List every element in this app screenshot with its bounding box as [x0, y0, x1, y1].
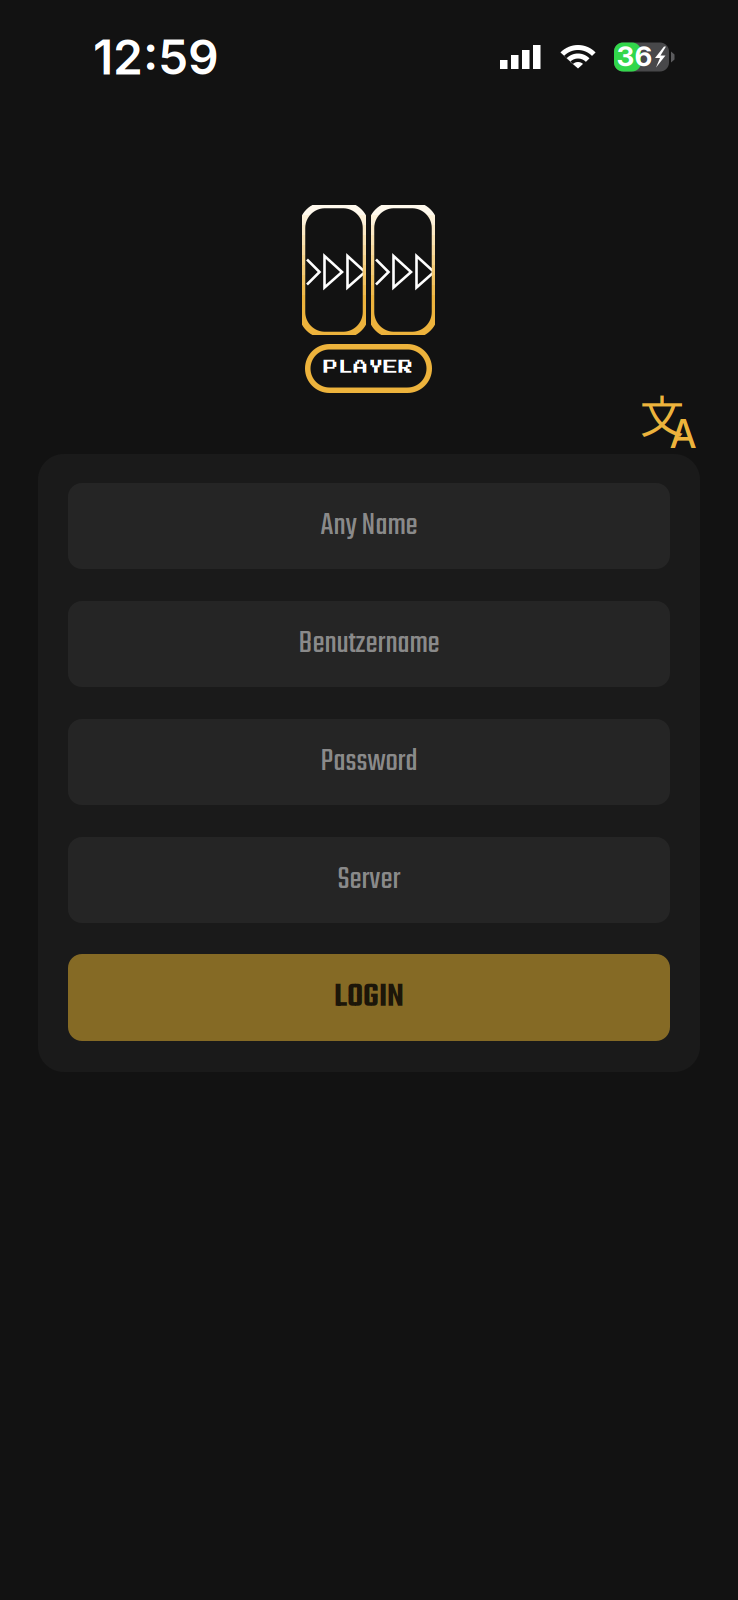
staticText: PLAYER	[323, 360, 413, 375]
staticText: A	[670, 411, 696, 457]
button[interactable]: Any Name	[68, 483, 670, 569]
staticText: Any Name	[320, 502, 417, 550]
staticText: Benutzername	[298, 620, 439, 668]
button[interactable]: Benutzername	[68, 601, 670, 687]
staticText: Server	[337, 856, 400, 904]
button[interactable]: LOGIN	[68, 954, 670, 1041]
staticText: Password	[320, 738, 417, 786]
button[interactable]: Server	[68, 837, 670, 923]
staticText: 12:59	[93, 28, 219, 86]
staticText: 36	[616, 39, 652, 73]
staticText: LOGIN	[334, 973, 404, 1022]
button[interactable]: Change language	[644, 396, 698, 450]
button[interactable]: Password	[68, 719, 670, 805]
staticText: 文	[640, 382, 684, 446]
